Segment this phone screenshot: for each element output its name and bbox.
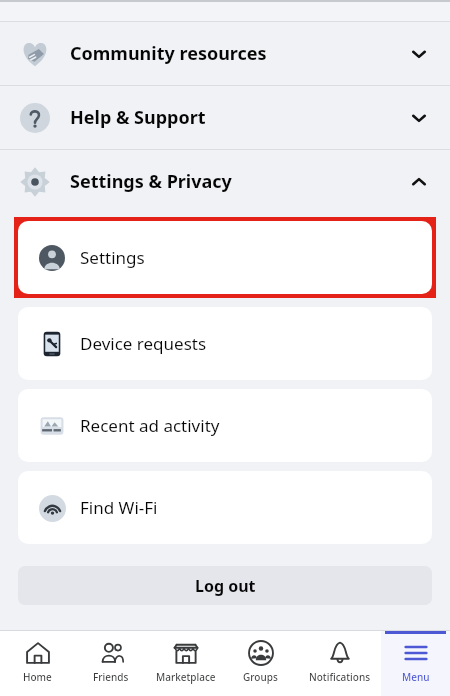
button[interactable]: Notifications [298, 631, 381, 696]
staticText: Settings & Privacy [70, 169, 232, 194]
staticText: Settings [80, 246, 145, 269]
staticText: Groups [243, 670, 278, 684]
staticText: Help & Support [70, 105, 206, 130]
button[interactable]: Settings & Privacy [0, 150, 450, 213]
button[interactable]: Menu [381, 631, 450, 696]
button[interactable]: Log out [18, 566, 432, 605]
button[interactable]: Recent ad activity [18, 389, 432, 462]
staticText: Recent ad activity [80, 414, 220, 437]
staticText: Device requests [80, 332, 207, 355]
staticText: Notifications [309, 670, 371, 684]
button[interactable]: Community resources [0, 22, 450, 85]
button[interactable]: Find Wi-Fi [18, 471, 432, 544]
staticText: Marketplace [156, 670, 216, 684]
staticText: Log out [195, 575, 256, 597]
button[interactable]: Groups [223, 631, 298, 696]
button[interactable]: Help & Support [0, 86, 450, 149]
button[interactable]: Settings [18, 221, 432, 294]
staticText: Home [23, 670, 52, 684]
staticText: Find Wi-Fi [80, 496, 158, 519]
button[interactable]: Marketplace [148, 631, 223, 696]
staticText: Community resources [70, 41, 267, 66]
staticText: Friends [93, 670, 129, 684]
staticText: Menu [402, 670, 430, 684]
button[interactable]: Device requests [18, 307, 432, 380]
button[interactable]: Home [0, 631, 74, 696]
button[interactable]: Friends [74, 631, 148, 696]
